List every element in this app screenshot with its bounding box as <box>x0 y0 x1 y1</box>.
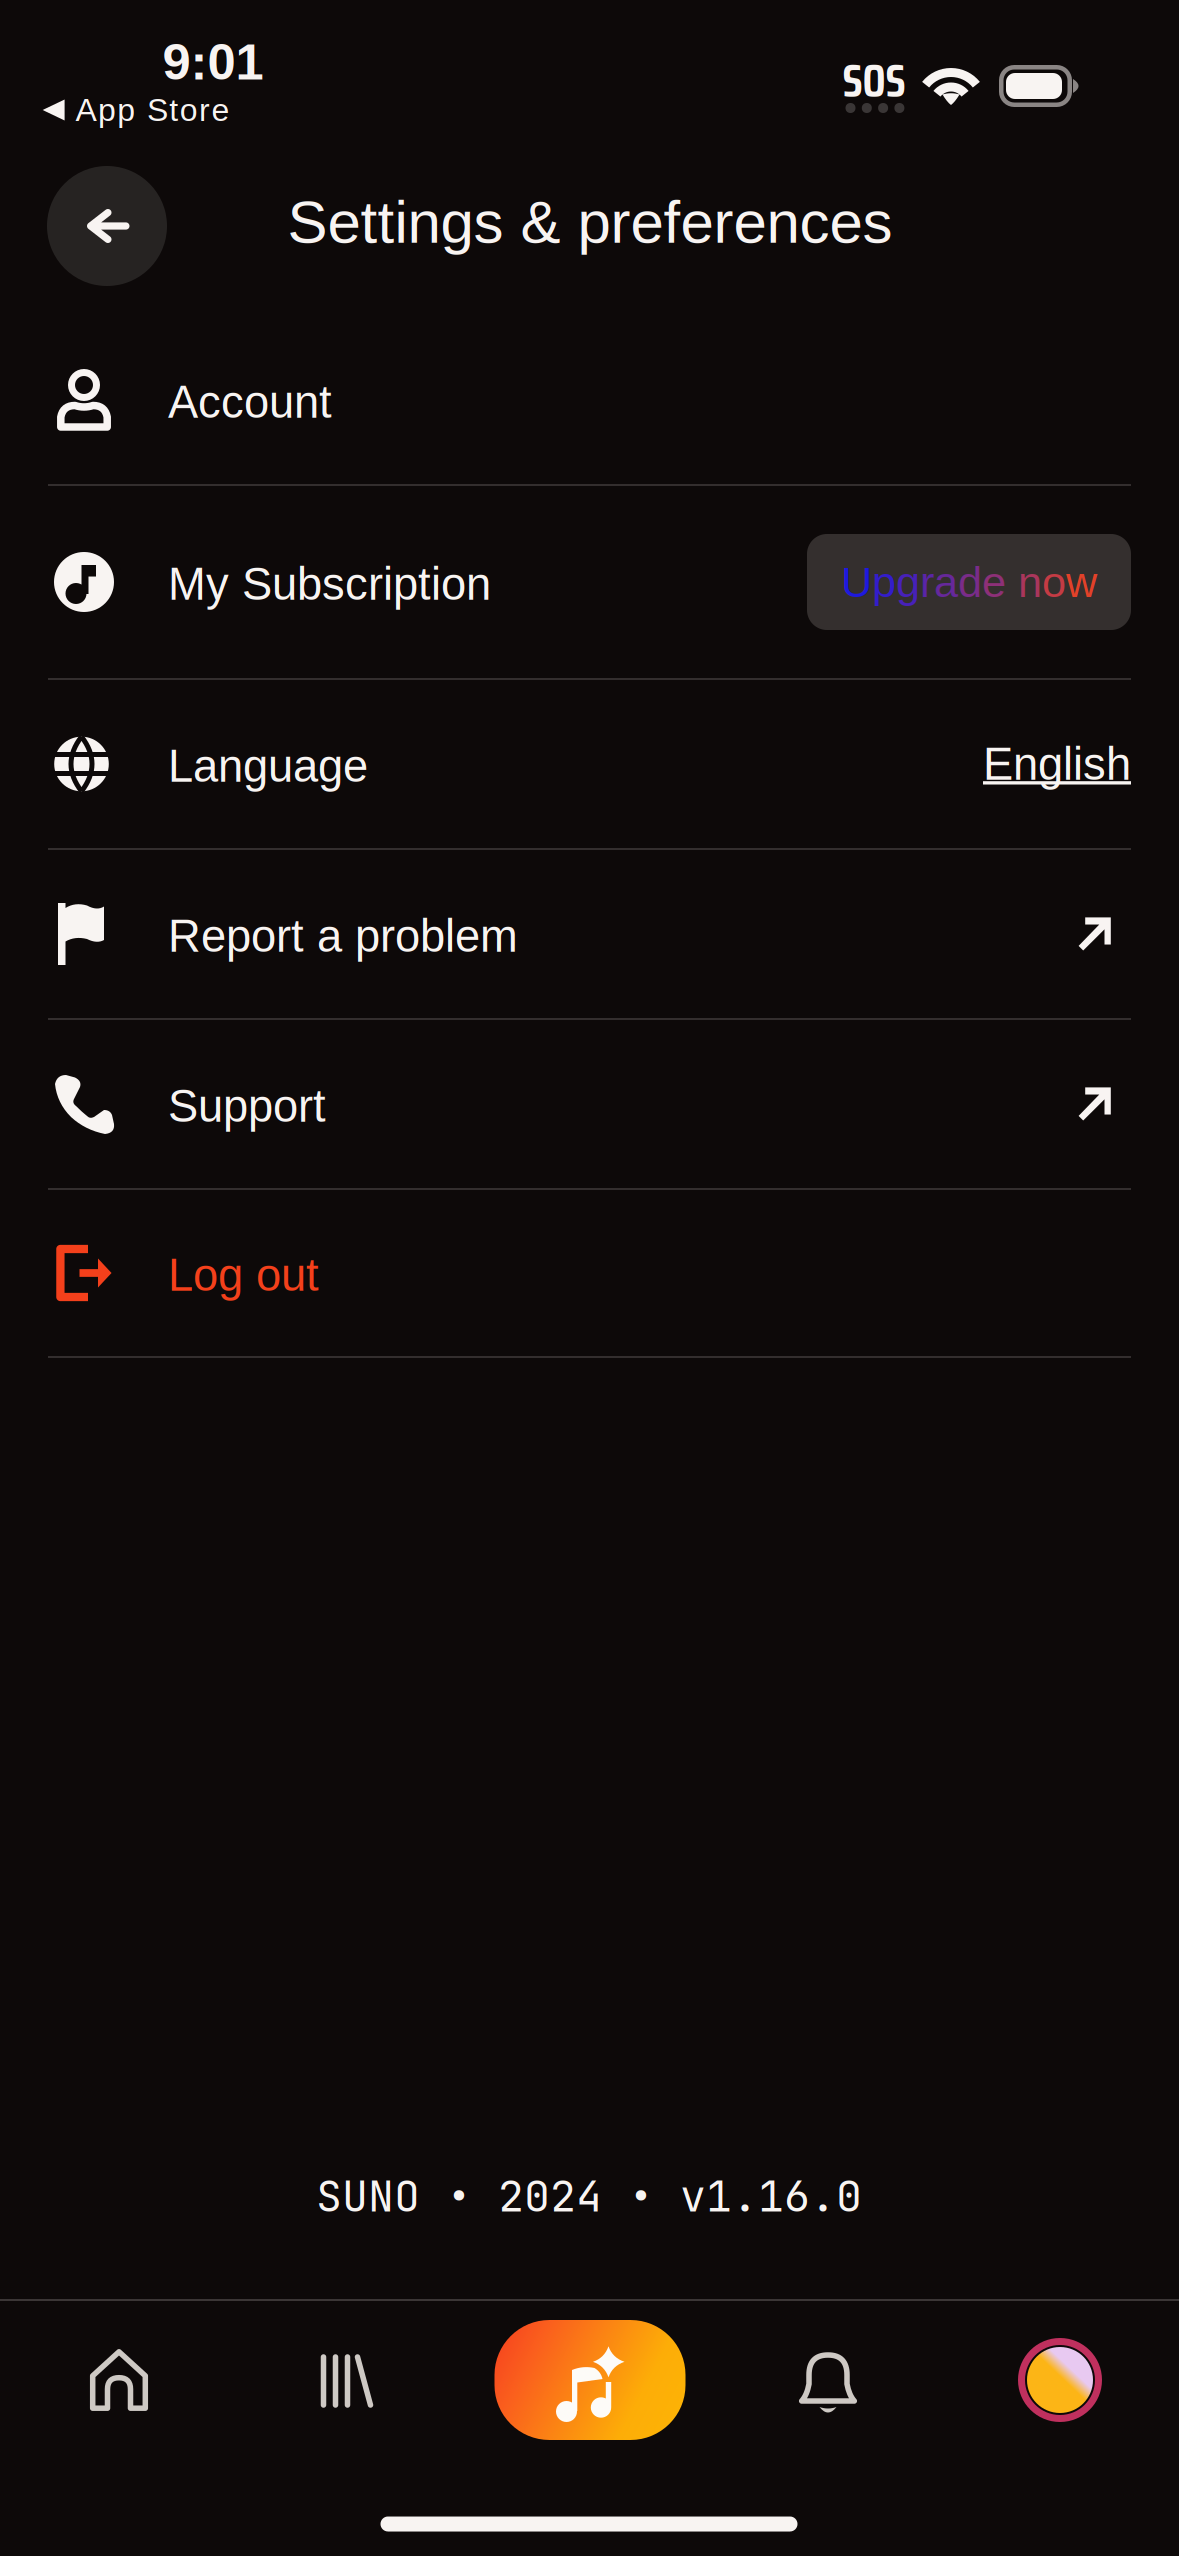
staticText: p <box>872 558 896 606</box>
staticText: o <box>1042 558 1066 606</box>
button[interactable]: Support <box>0 1019 1179 1189</box>
button[interactable]: Log out <box>0 1189 1179 1357</box>
staticText: Settings & preferences <box>287 188 892 255</box>
staticText: w <box>1066 558 1097 606</box>
staticText: a <box>934 558 958 606</box>
staticText: My Subscription <box>168 559 491 609</box>
staticText: Support <box>168 1081 326 1131</box>
staticText: English <box>983 739 1131 789</box>
button[interactable]: Language <box>0 679 1179 849</box>
staticText: App Store <box>76 92 229 128</box>
button[interactable]: Library <box>271 2306 421 2456</box>
staticText: SUNO • 2024 • v1.16.0 <box>316 2167 862 2224</box>
staticText: g <box>896 558 920 606</box>
button[interactable]: Create <box>490 2305 690 2455</box>
staticText: r <box>920 558 934 606</box>
button[interactable]: Notifications <box>753 2306 903 2456</box>
staticText: Language <box>168 741 368 791</box>
staticText: U <box>841 558 872 606</box>
button[interactable]: Report a problem <box>0 849 1179 1019</box>
button[interactable]: Back <box>47 166 167 286</box>
button[interactable]: U <box>807 534 1131 630</box>
staticText: e <box>982 558 1006 606</box>
button[interactable]: Home <box>44 2305 194 2455</box>
staticText: n <box>1018 558 1042 606</box>
staticText: 9:01 <box>162 34 263 90</box>
button[interactable]: My Subscription <box>0 485 1179 679</box>
staticText: SOS <box>842 45 905 117</box>
button[interactable]: Account <box>0 315 1179 485</box>
staticText: Report a problem <box>168 911 518 961</box>
staticText: Log out <box>168 1250 319 1300</box>
staticText: Account <box>168 377 332 427</box>
staticText: d <box>958 558 982 606</box>
button[interactable]: Profile <box>985 2305 1135 2455</box>
